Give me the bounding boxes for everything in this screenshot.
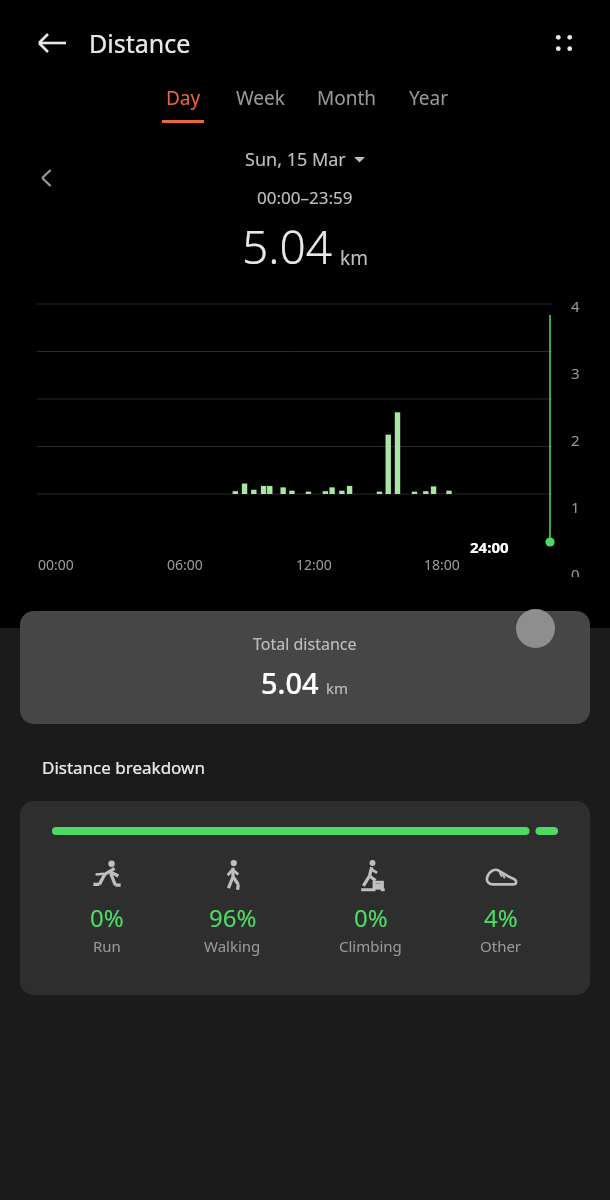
staticText: Year xyxy=(409,85,449,111)
staticText: Distance breakdown xyxy=(42,756,205,779)
button[interactable]: 0% xyxy=(78,857,136,956)
staticText: Run xyxy=(93,936,121,956)
staticText: 06:00 xyxy=(167,555,203,574)
button[interactable]: Sun, 15 Mar xyxy=(245,147,365,172)
button[interactable]: 96% xyxy=(194,857,271,956)
staticText: 5.04 xyxy=(242,215,333,278)
staticText: 18:00 xyxy=(424,555,460,574)
button[interactable]: Scrub chart xyxy=(516,609,555,648)
staticText: 3 xyxy=(571,363,580,383)
button[interactable]: Year xyxy=(393,85,465,120)
staticText: 4 xyxy=(571,296,580,316)
button[interactable]: 0% xyxy=(329,857,412,956)
staticText: 12:00 xyxy=(296,555,332,574)
staticText: 00:00–23:59 xyxy=(257,186,353,209)
button[interactable]: Day xyxy=(146,85,220,123)
staticText: 0% xyxy=(354,901,388,934)
staticText: 96% xyxy=(209,901,257,934)
button[interactable]: More options xyxy=(538,17,590,69)
staticText: 0 xyxy=(571,564,580,577)
staticText: Walking xyxy=(204,936,261,956)
button[interactable]: Month xyxy=(301,85,393,120)
staticText: 1 xyxy=(571,497,580,517)
staticText: Distance xyxy=(89,26,191,60)
staticText: Day xyxy=(166,85,201,111)
staticText: 5.04 xyxy=(261,663,319,702)
staticText: Sun, 15 Mar xyxy=(245,147,346,172)
staticText: km xyxy=(340,245,368,271)
staticText: Other xyxy=(480,936,522,956)
button[interactable]: Back xyxy=(22,13,82,73)
staticText: Month xyxy=(317,85,377,111)
staticText: Climbing xyxy=(339,936,402,956)
staticText: 2 xyxy=(571,430,580,450)
staticText: km xyxy=(326,678,349,698)
button[interactable]: Total distance xyxy=(20,611,590,724)
button[interactable]: Previous day xyxy=(24,155,70,201)
staticText: 24:00 xyxy=(470,537,509,557)
button[interactable]: 4% xyxy=(470,857,532,956)
staticText: 0% xyxy=(90,901,124,934)
staticText: Week xyxy=(236,85,285,111)
staticText: 00:00 xyxy=(38,555,74,574)
staticText: Total distance xyxy=(253,633,357,655)
staticText: 4% xyxy=(484,901,518,934)
button[interactable]: Week xyxy=(220,85,301,120)
